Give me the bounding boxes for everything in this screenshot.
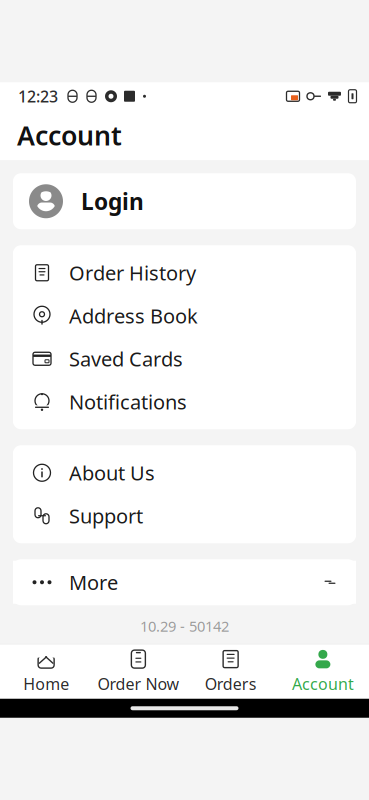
- staticText: More: [69, 569, 118, 596]
- staticText: Order History: [69, 259, 196, 286]
- staticText: Account: [17, 118, 122, 153]
- staticText: 12:23: [18, 86, 58, 107]
- staticText: Login: [81, 186, 144, 216]
- button[interactable]: Saved Cards: [13, 337, 356, 380]
- staticText: Order Now: [97, 673, 179, 694]
- staticText: Support: [69, 502, 143, 529]
- button[interactable]: About Us: [13, 451, 356, 494]
- staticText: Address Book: [69, 302, 198, 329]
- button[interactable]: Notifications: [13, 380, 356, 423]
- button[interactable]: Address Book: [13, 294, 356, 337]
- button[interactable]: Orders: [184, 645, 277, 699]
- staticText: Home: [23, 673, 69, 694]
- staticText: 10.29 - 50142: [140, 616, 229, 636]
- button[interactable]: Login: [13, 173, 356, 229]
- button[interactable]: Home: [0, 645, 92, 699]
- button[interactable]: Order Now: [92, 645, 184, 699]
- staticText: Orders: [205, 673, 257, 694]
- button[interactable]: More: [13, 561, 356, 604]
- staticText: Notifications: [69, 388, 187, 415]
- staticText: Saved Cards: [69, 345, 183, 372]
- button[interactable]: Order History: [13, 251, 356, 294]
- staticText: Account: [292, 673, 354, 694]
- button[interactable]: Support: [13, 494, 356, 537]
- staticText: About Us: [69, 459, 155, 486]
- button[interactable]: Account: [277, 645, 369, 699]
